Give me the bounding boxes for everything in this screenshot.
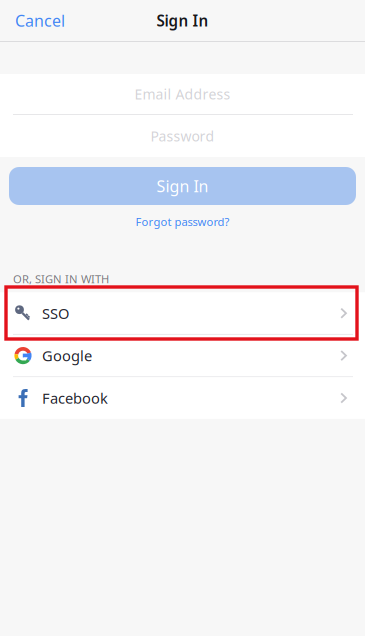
button[interactable]: SSO [0, 292, 365, 334]
staticText: OR, SIGN IN WITH [13, 271, 109, 287]
staticText: Forgot password? [135, 214, 229, 229]
staticText: Cancel [15, 10, 65, 31]
staticText: Google [42, 346, 92, 366]
staticText: SSO [42, 303, 69, 323]
button[interactable]: Forgot password? [123, 205, 241, 237]
staticText: Email Address [134, 84, 230, 104]
button[interactable]: Google [0, 335, 365, 376]
button[interactable]: Facebook [0, 377, 365, 419]
staticText: Password [150, 126, 214, 146]
button[interactable]: Sign In [9, 167, 356, 205]
staticText: Sign In [156, 175, 208, 197]
staticText: Facebook [42, 388, 108, 408]
staticText: Sign In [156, 10, 208, 31]
button[interactable]: Cancel [0, 0, 77, 41]
